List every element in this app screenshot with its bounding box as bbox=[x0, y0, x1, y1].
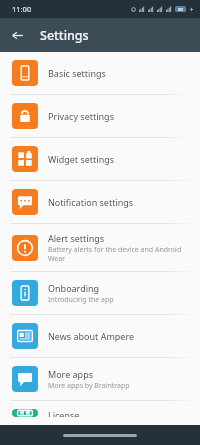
staticText: 80 bbox=[178, 7, 183, 12]
staticText: More apps by Braintrapp bbox=[48, 381, 130, 391]
button[interactable]: Basic settings bbox=[0, 52, 200, 94]
staticText: Privacy settings bbox=[48, 110, 114, 122]
staticText: Onboarding bbox=[48, 282, 100, 294]
button[interactable]: Widget settings bbox=[0, 138, 200, 180]
staticText: Notification settings bbox=[48, 196, 134, 208]
button[interactable]: News about Ampere bbox=[0, 315, 200, 357]
button[interactable]: Onboarding bbox=[0, 272, 200, 314]
button[interactable]: Back bbox=[0, 18, 34, 52]
staticText: License bbox=[48, 409, 80, 417]
staticText: Battery alerts for the device and Androi… bbox=[48, 245, 190, 263]
button[interactable]: License bbox=[0, 401, 200, 425]
staticText: Widget settings bbox=[48, 153, 115, 165]
button[interactable]: More apps bbox=[0, 358, 200, 400]
staticText: Alert settings bbox=[48, 232, 105, 244]
button[interactable]: Notification settings bbox=[0, 181, 200, 223]
staticText: Basic settings bbox=[48, 67, 106, 79]
staticText: Introducing the app bbox=[48, 295, 114, 305]
staticText: Settings bbox=[40, 27, 89, 44]
staticText: More apps bbox=[48, 368, 93, 380]
button[interactable]: Alert settings bbox=[0, 224, 200, 271]
button[interactable]: Privacy settings bbox=[0, 95, 200, 137]
staticText: News about Ampere bbox=[48, 330, 135, 342]
staticText: 11:00 bbox=[12, 4, 32, 14]
